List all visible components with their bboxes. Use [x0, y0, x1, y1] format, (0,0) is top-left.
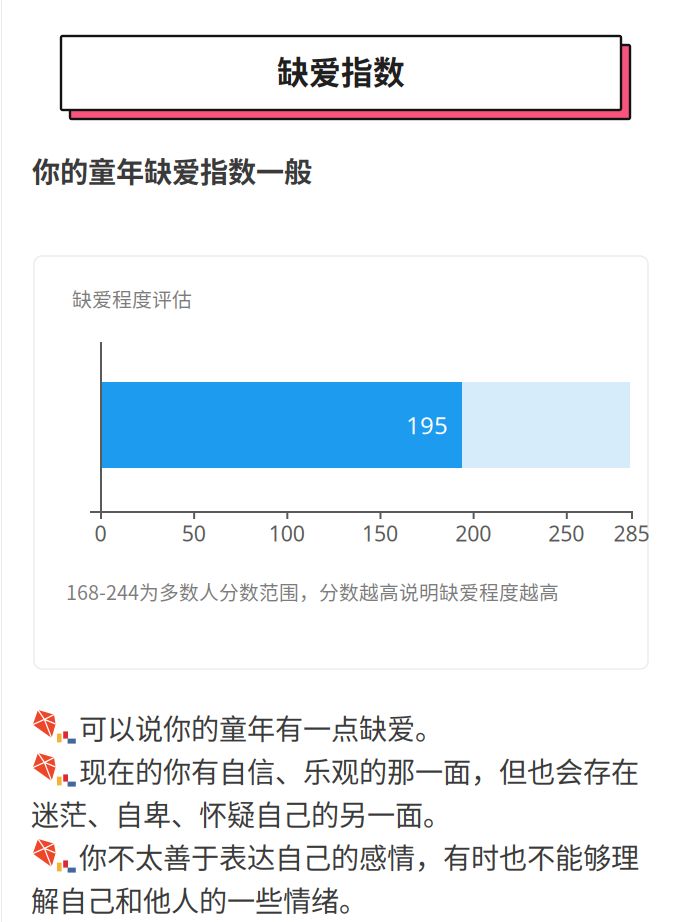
staticText: 你不太善于表达自己的感情，有时也不能够理 [79, 836, 639, 877]
staticText: 解自己和他人的一些情绪。 [31, 879, 367, 920]
staticText: 250 [548, 519, 584, 547]
staticText: 195 [406, 409, 448, 441]
staticText: 200 [455, 519, 491, 547]
staticText: 缺爱程度评估 [72, 284, 192, 313]
staticText: 可以说你的童年有一点缺爱。 [79, 707, 443, 748]
staticText: 150 [362, 519, 398, 547]
staticText: 100 [269, 519, 305, 547]
staticText: 0 [94, 519, 106, 547]
staticText: 迷茫、自卑、怀疑自己的另一面。 [31, 793, 451, 834]
staticText: 50 [182, 519, 206, 547]
staticText: 你的童年缺爱指数一般 [32, 150, 312, 191]
staticText: 285 [613, 519, 649, 547]
staticText: 现在的你有自信、乐观的那一面，但也会存在 [79, 750, 639, 791]
button[interactable]: 缺爱指数 [61, 36, 621, 110]
staticText: 缺爱指数 [277, 47, 405, 93]
staticText: 168-244为多数人分数范围，分数越高说明缺爱程度越高 [66, 577, 559, 606]
